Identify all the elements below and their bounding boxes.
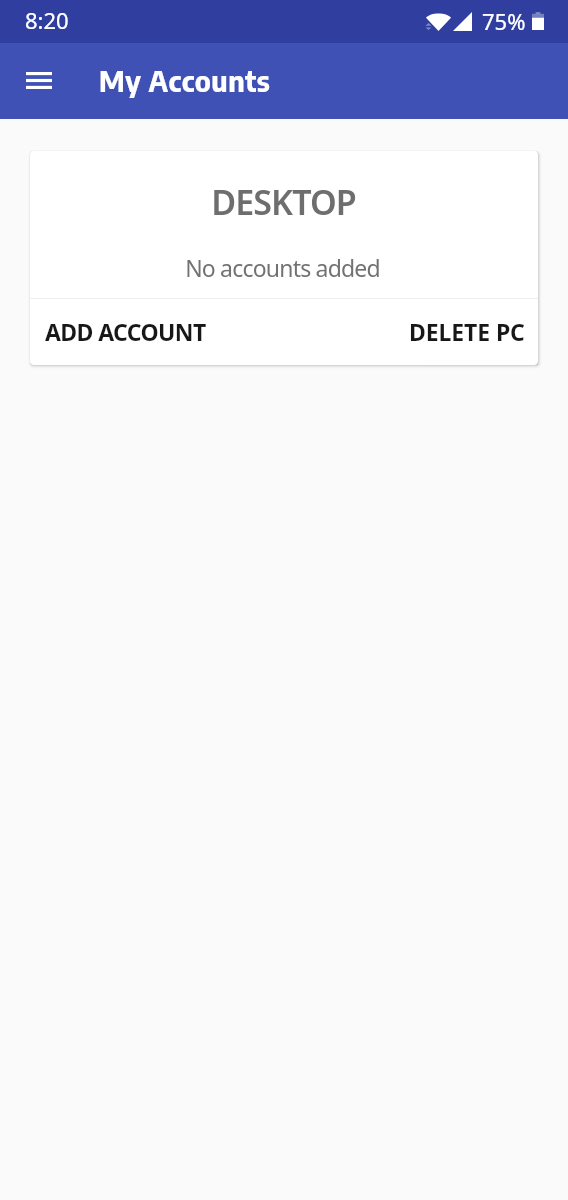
button[interactable]: ADD ACCOUNT — [37, 308, 214, 356]
button[interactable]: Open navigation drawer — [13, 55, 65, 105]
staticText: DELETE PC — [409, 316, 525, 347]
staticText: My Accounts — [99, 62, 271, 98]
button[interactable]: DELETE PC — [401, 308, 533, 356]
staticText: 8:20 — [25, 5, 69, 35]
staticText: No accounts added — [185, 252, 380, 283]
staticText: 75% — [482, 6, 526, 36]
staticText: ADD ACCOUNT — [45, 316, 206, 347]
staticText: DESKTOP — [211, 179, 356, 225]
